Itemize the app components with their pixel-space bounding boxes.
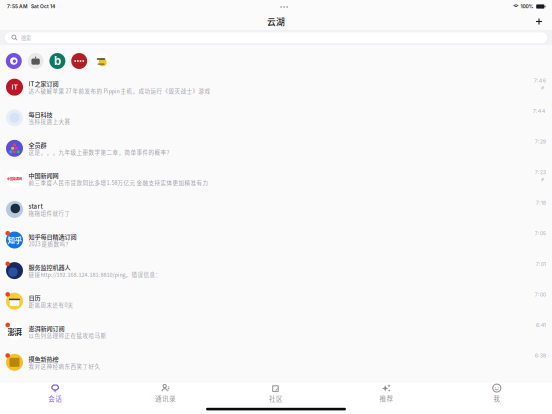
staticText: 链接http://192.168.124.181:8810/ping，错误信息： bbox=[29, 270, 162, 278]
button[interactable]: 社区 bbox=[221, 381, 331, 405]
staticText: 知乎 bbox=[7, 235, 21, 245]
button[interactable]: 全员群 bbox=[0, 131, 552, 162]
button[interactable]: 中国新闻网 bbox=[0, 162, 552, 193]
staticText: 社区 bbox=[269, 394, 283, 403]
staticText: 7:00 bbox=[535, 291, 546, 298]
staticText: 7:46 bbox=[534, 77, 546, 84]
staticText: 当科技遇上大赛 bbox=[29, 117, 71, 125]
staticText: 达人破解苹果 27 年前发布的 Pippin 主机，成功运行《毁灭战士》游戏 bbox=[29, 87, 211, 95]
staticText: 澎湃 bbox=[7, 326, 21, 337]
staticText: 日历 bbox=[29, 293, 41, 302]
button[interactable]: 每日科技 bbox=[0, 101, 552, 132]
staticText: 每日科技 bbox=[29, 110, 53, 119]
button[interactable]: 通讯录 bbox=[110, 381, 221, 405]
button[interactable]: 会话 bbox=[0, 381, 110, 405]
button[interactable]: Mini app 1 bbox=[6, 53, 22, 69]
staticText: 搜索 bbox=[21, 34, 31, 41]
staticText: 7:18 bbox=[536, 199, 546, 206]
button[interactable]: Mini app 4 bbox=[71, 53, 87, 69]
staticText: 推荐 bbox=[379, 394, 393, 403]
staticText: 100% bbox=[521, 3, 534, 9]
staticText: 服务监控机器人 bbox=[29, 263, 71, 272]
staticText: 7:23 bbox=[535, 169, 546, 175]
button[interactable]: Mini app 2 bbox=[28, 53, 44, 69]
button[interactable]: 摸鱼新热榜 bbox=[0, 345, 552, 376]
staticText: 7:05 bbox=[535, 230, 546, 237]
staticText: 6:41 bbox=[536, 322, 546, 328]
button[interactable]: New chat bbox=[531, 13, 547, 29]
button[interactable]: IT bbox=[0, 70, 552, 101]
staticText: IT bbox=[11, 83, 17, 91]
staticText: 距离周末还有0天 bbox=[29, 301, 74, 309]
staticText: 2023 是质数吗？ bbox=[29, 240, 72, 248]
button[interactable]: 搜索 bbox=[5, 32, 547, 43]
staticText: 7:44 bbox=[533, 108, 546, 114]
button[interactable]: Mini app 5 bbox=[93, 53, 109, 69]
button[interactable]: 知乎 bbox=[0, 223, 552, 254]
staticText: 中国新闻网 bbox=[7, 177, 22, 181]
button[interactable]: 日历 bbox=[0, 284, 552, 315]
button[interactable]: 澎湃 bbox=[0, 315, 552, 346]
staticText: 会话 bbox=[48, 394, 62, 403]
staticText: 知乎每日精选订阅 bbox=[29, 232, 77, 241]
staticText: 澎湃新闻订阅 bbox=[29, 324, 65, 333]
staticText: 7:55 AM Sat Oct 14 bbox=[7, 3, 55, 9]
staticText: 以色列总理称正在猛攻哈马斯 bbox=[29, 331, 107, 339]
button[interactable]: start bbox=[0, 193, 552, 223]
staticText: start bbox=[29, 201, 43, 210]
staticText: 通讯录 bbox=[155, 394, 176, 403]
staticText: 这是，，，九年级上册数学第二章，简单事件的概率？ bbox=[29, 148, 173, 156]
staticText: IT之家订阅 bbox=[29, 79, 59, 88]
staticText: 我对这神经病东西笑了好久 bbox=[29, 362, 101, 370]
staticText: 7:29 bbox=[535, 138, 546, 145]
button[interactable]: 服务监控机器人 bbox=[0, 254, 552, 284]
staticText: 中国新闻网 bbox=[29, 171, 59, 180]
button[interactable]: Mini app 3 bbox=[49, 53, 65, 69]
button[interactable]: 我 bbox=[442, 381, 552, 405]
staticText: 拖拖组件就行了 bbox=[29, 209, 71, 217]
staticText: 7:01 bbox=[536, 261, 546, 267]
button[interactable]: 推荐 bbox=[331, 381, 442, 405]
staticText: 我 bbox=[493, 394, 500, 403]
staticText: 前三季度人民币贷款同比多增1.58万亿元 金融支持实体更加精准有力 bbox=[29, 179, 209, 187]
staticText: • • • bbox=[280, 4, 288, 9]
staticText: 6:38 bbox=[535, 352, 546, 359]
staticText: 摸鱼新热榜 bbox=[29, 354, 59, 363]
staticText: b bbox=[54, 54, 61, 68]
staticText: 全员群 bbox=[29, 140, 47, 149]
staticText: 云湖 bbox=[267, 15, 285, 28]
